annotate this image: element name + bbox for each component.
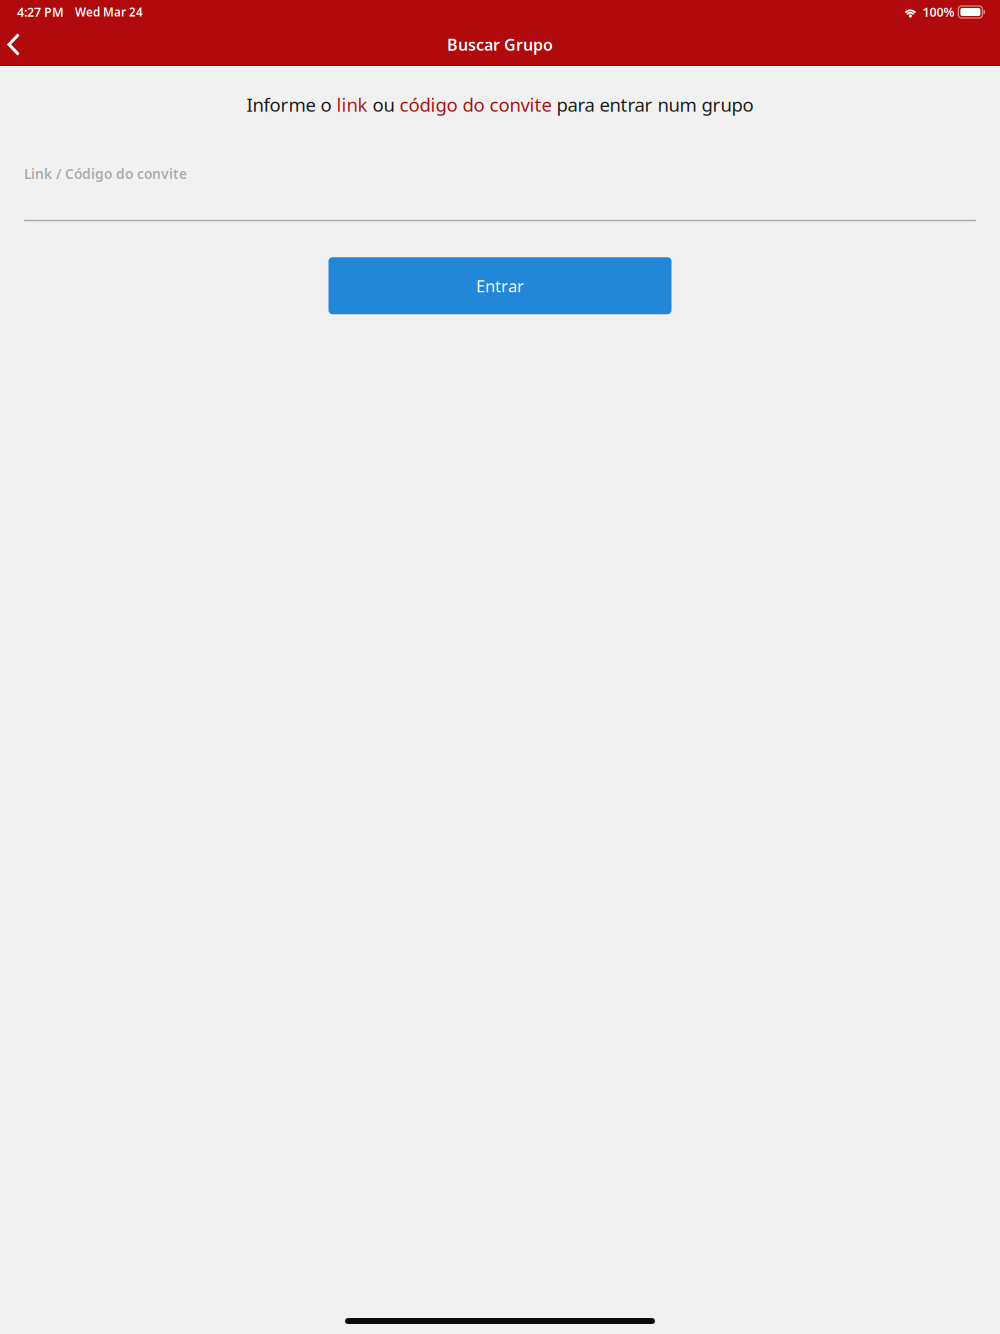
staticText: Entrar — [476, 274, 524, 297]
staticText: 100% — [922, 3, 954, 21]
staticText: Link / Código do convite — [24, 164, 187, 183]
staticText: Wed Mar 24 — [75, 4, 143, 20]
button[interactable]: Entrar — [328, 257, 671, 314]
staticText: Informe o — [246, 92, 336, 117]
staticText: ou — [367, 92, 399, 117]
staticText: código do convite — [399, 92, 551, 117]
staticText: para entrar num grupo — [551, 92, 753, 117]
button[interactable]: Link / Código do convite — [0, 162, 1000, 221]
staticText: Buscar Grupo — [447, 34, 553, 55]
staticText: link — [336, 92, 367, 117]
staticText: 4:27 PM — [17, 3, 64, 21]
button[interactable]: Back — [0, 24, 44, 65]
